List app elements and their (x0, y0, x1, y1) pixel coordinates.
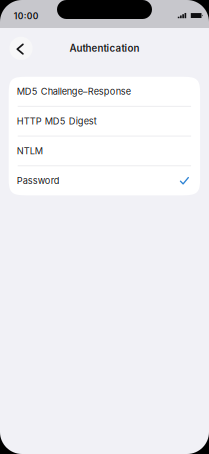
staticText: MD5 Challenge–Response (17, 86, 131, 97)
staticText: Password (17, 175, 60, 186)
staticText: 10:00 (14, 11, 39, 21)
staticText: Authentication (69, 42, 139, 54)
button[interactable]: Back (9, 37, 33, 60)
button[interactable]: MD5 Challenge–Response (9, 77, 200, 106)
staticText: NTLM (17, 145, 43, 156)
staticText: HTTP MD5 Digest (17, 116, 97, 127)
button[interactable]: HTTP MD5 Digest (9, 107, 200, 136)
button[interactable]: NTLM (9, 136, 200, 165)
button[interactable]: Password (9, 166, 200, 195)
